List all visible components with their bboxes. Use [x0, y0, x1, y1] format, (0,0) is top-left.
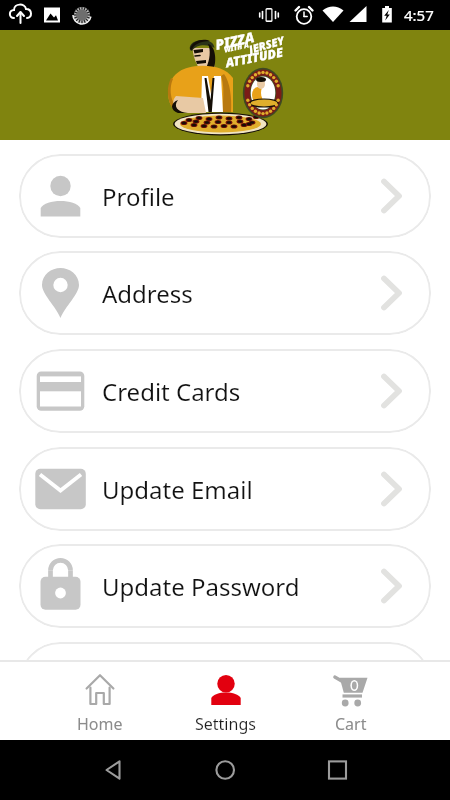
button[interactable]: Order History — [19, 642, 431, 660]
staticText: Settings — [195, 713, 256, 735]
button[interactable]: Home — [37, 662, 163, 740]
button[interactable]: Profile — [19, 154, 431, 238]
staticText: PIZZA — [213, 27, 257, 54]
button[interactable]: Settings — [163, 662, 288, 740]
button[interactable]: Update Email — [19, 447, 431, 531]
button[interactable]: Update Password — [19, 544, 431, 628]
staticText: Credit Cards — [102, 375, 241, 408]
staticText: JERSEY — [247, 32, 286, 57]
staticText: ATTITUDE — [224, 43, 285, 71]
staticText: Profile — [102, 180, 175, 213]
staticText: Update Email — [102, 473, 253, 506]
staticText: Update Password — [102, 570, 300, 603]
button[interactable]: Cart — [288, 662, 413, 740]
staticText: 4:57 — [404, 5, 434, 25]
staticText: Home — [77, 713, 123, 735]
staticText: WITH A — [223, 40, 250, 55]
button[interactable]: Credit Cards — [19, 349, 431, 433]
button[interactable]: Address — [19, 251, 431, 335]
staticText: Cart — [335, 713, 367, 735]
staticText: Address — [102, 277, 193, 310]
